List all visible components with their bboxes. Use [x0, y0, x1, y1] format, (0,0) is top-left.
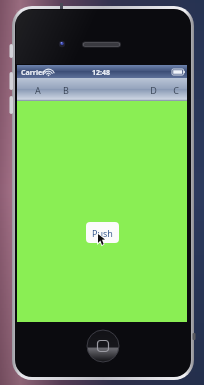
button[interactable]: C — [165, 78, 187, 101]
staticText: B — [63, 84, 69, 96]
button[interactable]: A — [27, 78, 49, 101]
staticText: A — [35, 84, 41, 96]
button[interactable]: D — [142, 78, 164, 101]
staticText: C — [173, 84, 179, 96]
staticText: 12:48 — [92, 68, 110, 78]
button[interactable]: Push — [86, 222, 119, 243]
button[interactable]: B — [55, 78, 77, 101]
staticText: Carrier — [21, 68, 46, 78]
staticText: D — [150, 84, 157, 96]
staticText: Push — [92, 227, 113, 239]
